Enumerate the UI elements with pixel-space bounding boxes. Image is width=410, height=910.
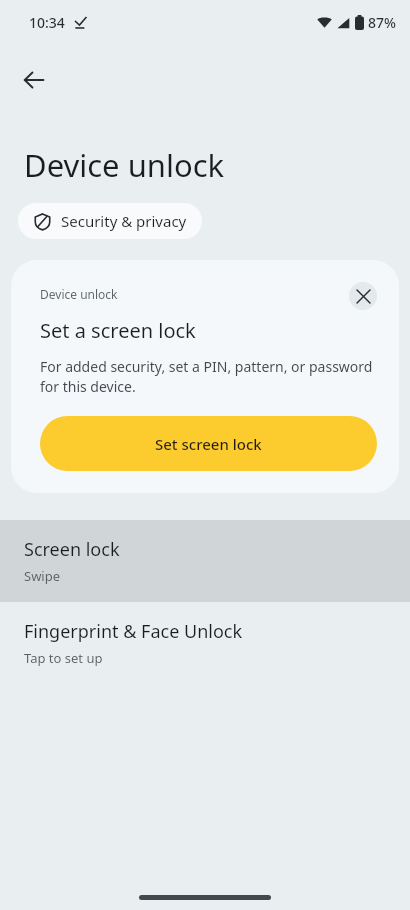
staticText: Swipe — [24, 567, 61, 585]
button[interactable]: Fingerprint & Face Unlock — [0, 602, 410, 684]
staticText: Tap to set up — [24, 649, 103, 667]
staticText: Security & privacy — [61, 211, 187, 231]
staticText: Device unlock — [40, 286, 349, 302]
staticText: Fingerprint & Face Unlock — [24, 619, 243, 644]
staticText: For added security, set a PIN, pattern, … — [40, 357, 377, 397]
staticText: Set a screen lock — [40, 317, 196, 344]
staticText: 10:34 — [29, 13, 65, 32]
button[interactable]: Security & privacy — [18, 203, 202, 239]
button[interactable]: Dismiss — [349, 282, 377, 310]
button[interactable]: Set screen lock — [40, 416, 377, 471]
staticText: Screen lock — [24, 537, 120, 562]
staticText: 87% — [368, 13, 396, 32]
staticText: Set screen lock — [155, 434, 262, 454]
staticText: Device unlock — [24, 144, 225, 186]
button[interactable]: Back — [10, 56, 58, 104]
button[interactable]: Screen lock — [0, 520, 410, 602]
